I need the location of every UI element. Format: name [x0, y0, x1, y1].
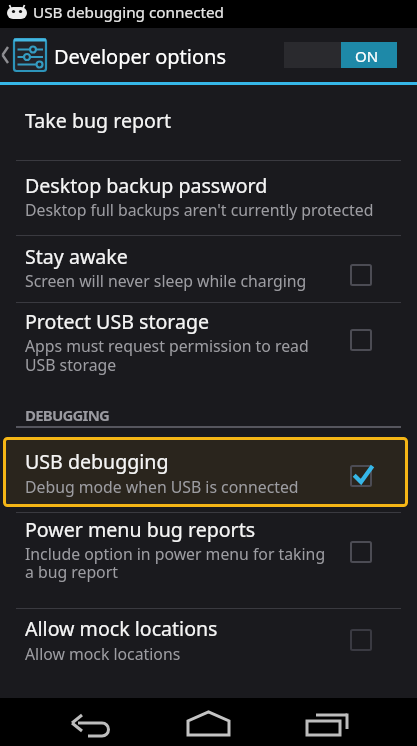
button[interactable]	[0, 608, 417, 698]
staticText: Allow mock locations	[25, 643, 181, 665]
button[interactable]	[351, 265, 371, 285]
staticText: Debug mode when USB is connected	[25, 476, 299, 498]
staticText: USB debugging connected	[33, 2, 225, 23]
button[interactable]	[0, 84, 417, 160]
button[interactable]	[351, 330, 371, 350]
staticText: Power menu bug reports	[25, 516, 256, 543]
button[interactable]	[287, 698, 357, 746]
staticText: Screen will never sleep while charging	[25, 270, 307, 292]
staticText: Take bug report	[25, 107, 172, 134]
button[interactable]	[0, 428, 417, 512]
button[interactable]	[0, 513, 417, 608]
staticText: Developer options	[54, 43, 227, 70]
button[interactable]	[0, 160, 417, 235]
staticText: Protect USB storage	[25, 308, 210, 335]
button[interactable]	[351, 542, 371, 562]
staticText: Apps must request permission to read	[25, 335, 309, 357]
button[interactable]: ON	[284, 42, 397, 68]
button[interactable]	[351, 466, 371, 486]
button[interactable]	[0, 302, 417, 390]
button[interactable]	[0, 28, 280, 82]
staticText: Include option in power menu for taking	[25, 543, 326, 565]
button[interactable]	[56, 698, 126, 746]
staticText: Stay awake	[25, 243, 128, 270]
button[interactable]	[351, 630, 371, 650]
staticText: Allow mock locations	[25, 615, 218, 642]
staticText: Desktop full backups aren't currently pr…	[25, 199, 374, 221]
staticText: USB storage	[25, 354, 117, 376]
staticText: a bug report	[25, 561, 118, 583]
staticText: DEBUGGING	[25, 405, 110, 425]
staticText: ON	[355, 46, 379, 66]
staticText: USB debugging	[25, 448, 169, 475]
button[interactable]	[173, 698, 243, 746]
staticText: Desktop backup password	[25, 172, 268, 199]
button[interactable]	[0, 235, 417, 302]
